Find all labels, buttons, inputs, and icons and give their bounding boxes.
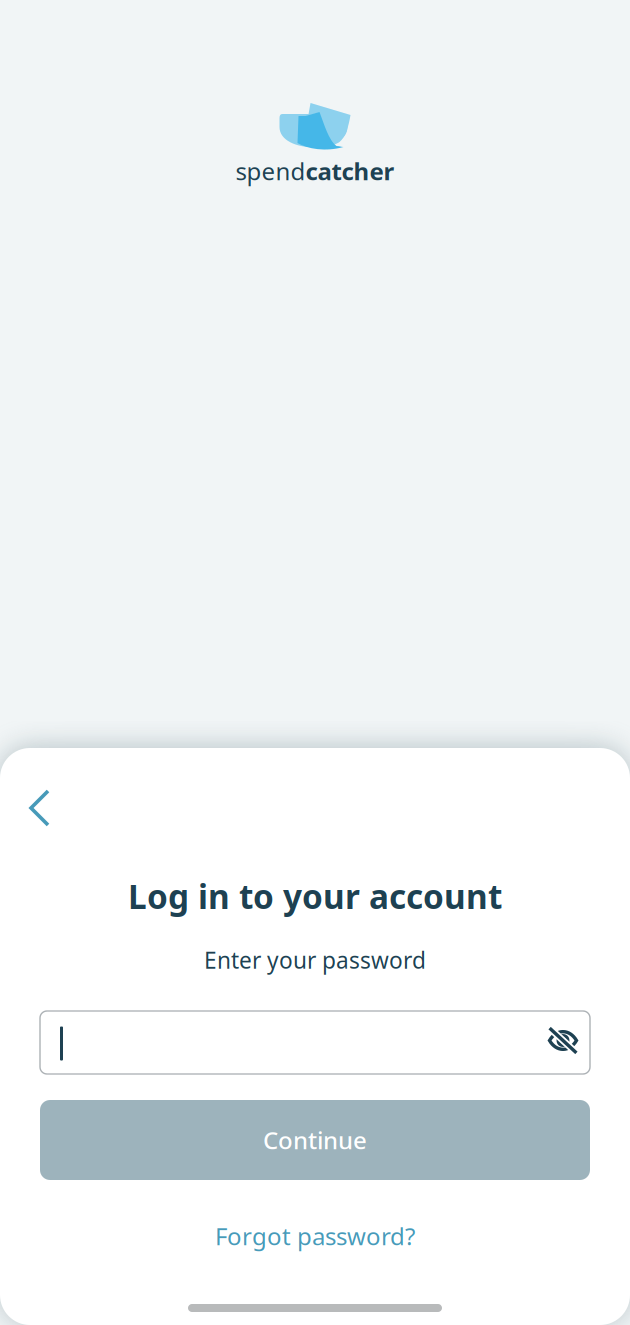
staticText: Forgot password?	[215, 1220, 415, 1252]
staticText: spend	[235, 155, 305, 187]
staticText: catcher	[305, 155, 394, 187]
staticText: Continue	[263, 1124, 367, 1156]
staticText: Log in to your account	[128, 874, 502, 918]
button[interactable]: Password	[40, 1011, 590, 1074]
staticText: Enter your password	[204, 945, 426, 975]
button[interactable]: Back	[0, 748, 74, 845]
button[interactable]: Forgot password?	[175, 1214, 455, 1258]
button[interactable]: Show password	[548, 1022, 590, 1062]
button[interactable]: Continue	[40, 1100, 590, 1180]
